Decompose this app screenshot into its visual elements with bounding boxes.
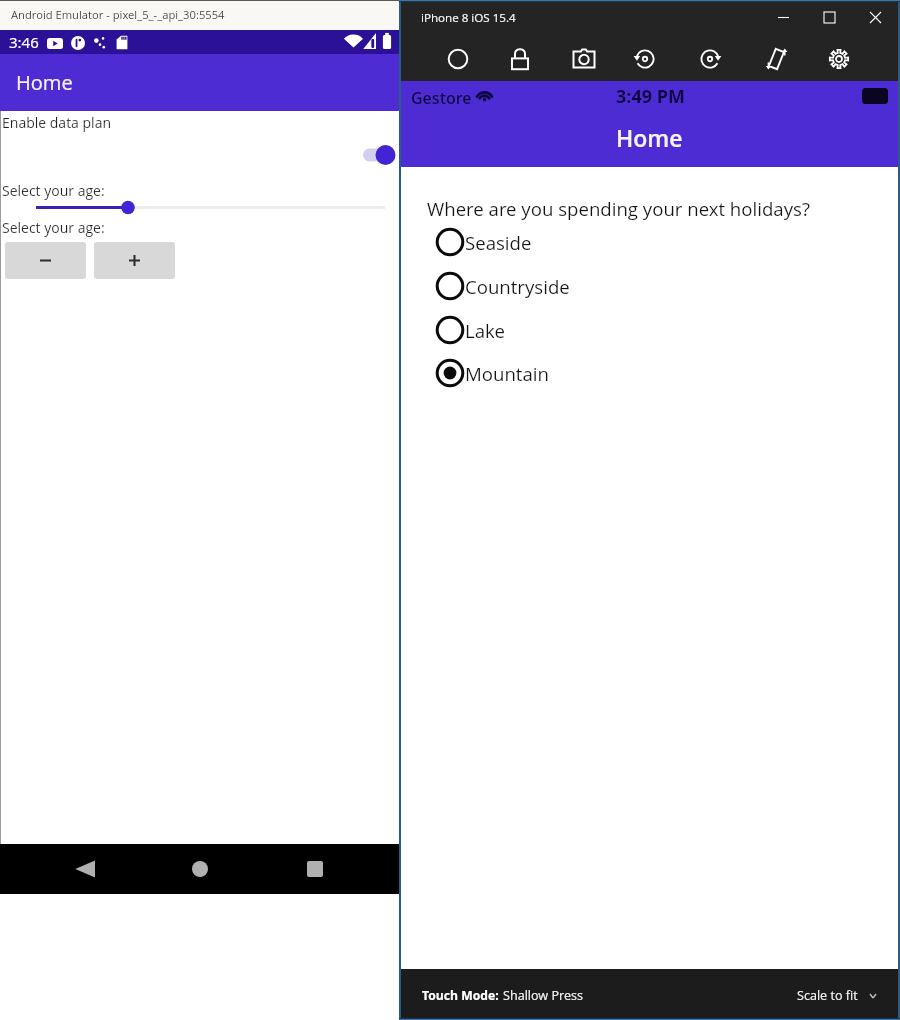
button[interactable]: Screenshot xyxy=(562,37,606,81)
button[interactable]: Scale to fit xyxy=(797,981,876,1010)
button[interactable]: Increase xyxy=(94,242,175,279)
staticText: Gestore xyxy=(411,87,472,109)
button[interactable]: Enable data plan xyxy=(352,139,396,171)
staticText: Lake xyxy=(465,318,505,343)
staticText: 3:46 xyxy=(9,32,39,52)
staticText: Android Emulator - pixel_5_-_api_30:5554 xyxy=(11,7,225,22)
staticText: Touch Mode: xyxy=(422,987,499,1004)
button[interactable]: Back xyxy=(64,844,104,894)
staticText: Where are you spending your next holiday… xyxy=(427,196,810,221)
staticText: Enable data plan xyxy=(2,113,112,132)
staticText: Select your age: xyxy=(2,218,105,237)
button[interactable]: Settings xyxy=(817,37,861,81)
button[interactable]: Minimize xyxy=(760,0,806,35)
staticText: Mountain xyxy=(465,361,549,386)
button[interactable]: Close xyxy=(852,0,898,35)
button[interactable]: Age slider xyxy=(0,196,399,219)
button[interactable]: Rotate right xyxy=(688,37,732,81)
button[interactable]: Lake xyxy=(435,308,505,352)
button[interactable]: Countryside xyxy=(435,264,570,308)
button[interactable]: Mountain xyxy=(435,351,549,395)
button[interactable]: Lock xyxy=(498,37,542,81)
staticText: Countryside xyxy=(465,274,570,299)
staticText: Seaside xyxy=(465,230,532,255)
button[interactable]: Shake xyxy=(755,37,799,81)
button[interactable]: Seaside xyxy=(435,220,532,264)
button[interactable]: Home xyxy=(436,37,480,81)
staticText: Shallow Press xyxy=(503,987,583,1004)
button[interactable]: Rotate left xyxy=(623,37,667,81)
button[interactable]: Home xyxy=(180,844,220,894)
staticText: Home xyxy=(616,122,683,153)
staticText: 3:49 PM xyxy=(616,84,685,109)
staticText: Home xyxy=(16,69,73,96)
button[interactable]: Decrease xyxy=(5,242,86,279)
button[interactable]: Recents xyxy=(295,844,335,894)
staticText: Scale to fit xyxy=(797,987,858,1004)
staticText: iPhone 8 iOS 15.4 xyxy=(421,10,516,26)
staticText: Select your age: xyxy=(2,181,105,200)
button[interactable]: Maximize xyxy=(806,0,852,35)
